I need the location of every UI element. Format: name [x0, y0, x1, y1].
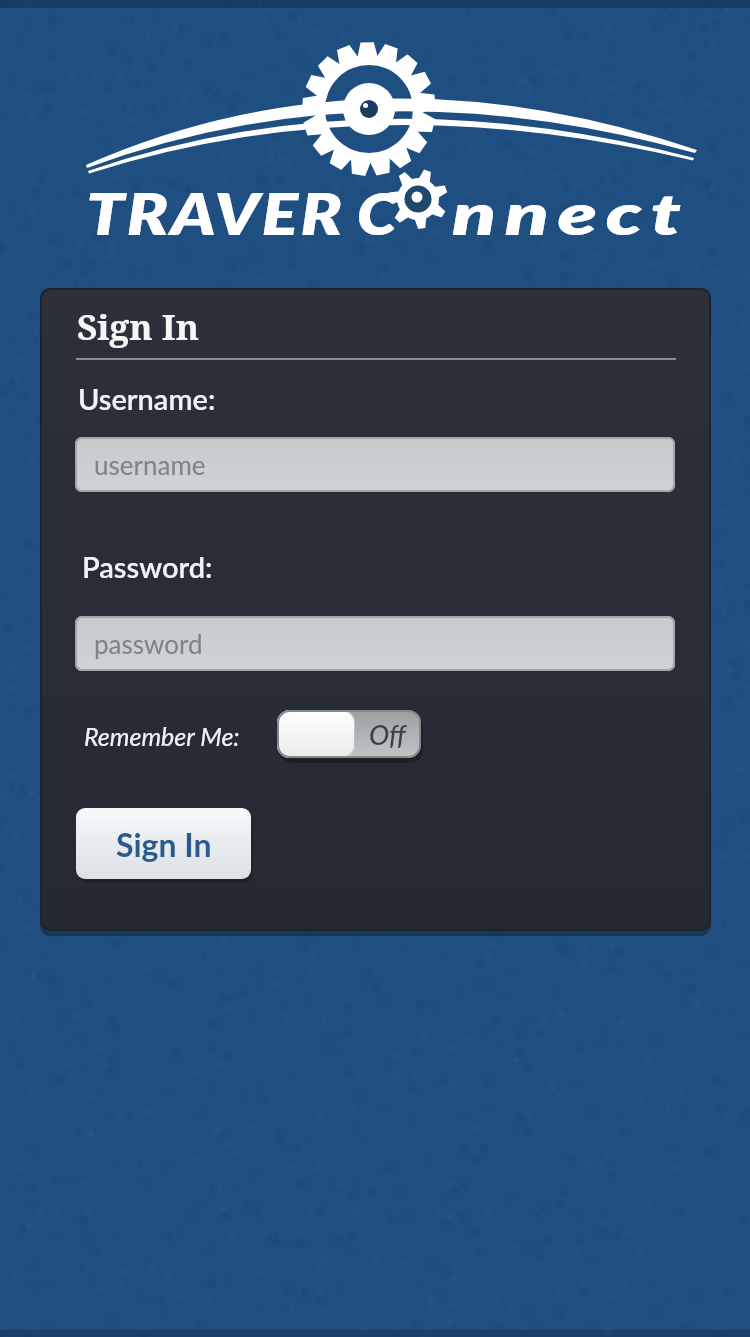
staticText: Off: [369, 718, 406, 750]
staticText: Sign In: [77, 303, 200, 351]
staticText: Remember Me:: [84, 721, 240, 751]
staticText: Sign In: [116, 825, 212, 863]
staticText: nnect: [452, 180, 689, 247]
staticText: Username:: [78, 381, 216, 416]
staticText: TRAVER: [86, 180, 345, 247]
staticText: password: [94, 628, 203, 659]
staticText: Password:: [82, 549, 213, 584]
staticText: C: [357, 180, 397, 247]
staticText: username: [94, 449, 206, 480]
